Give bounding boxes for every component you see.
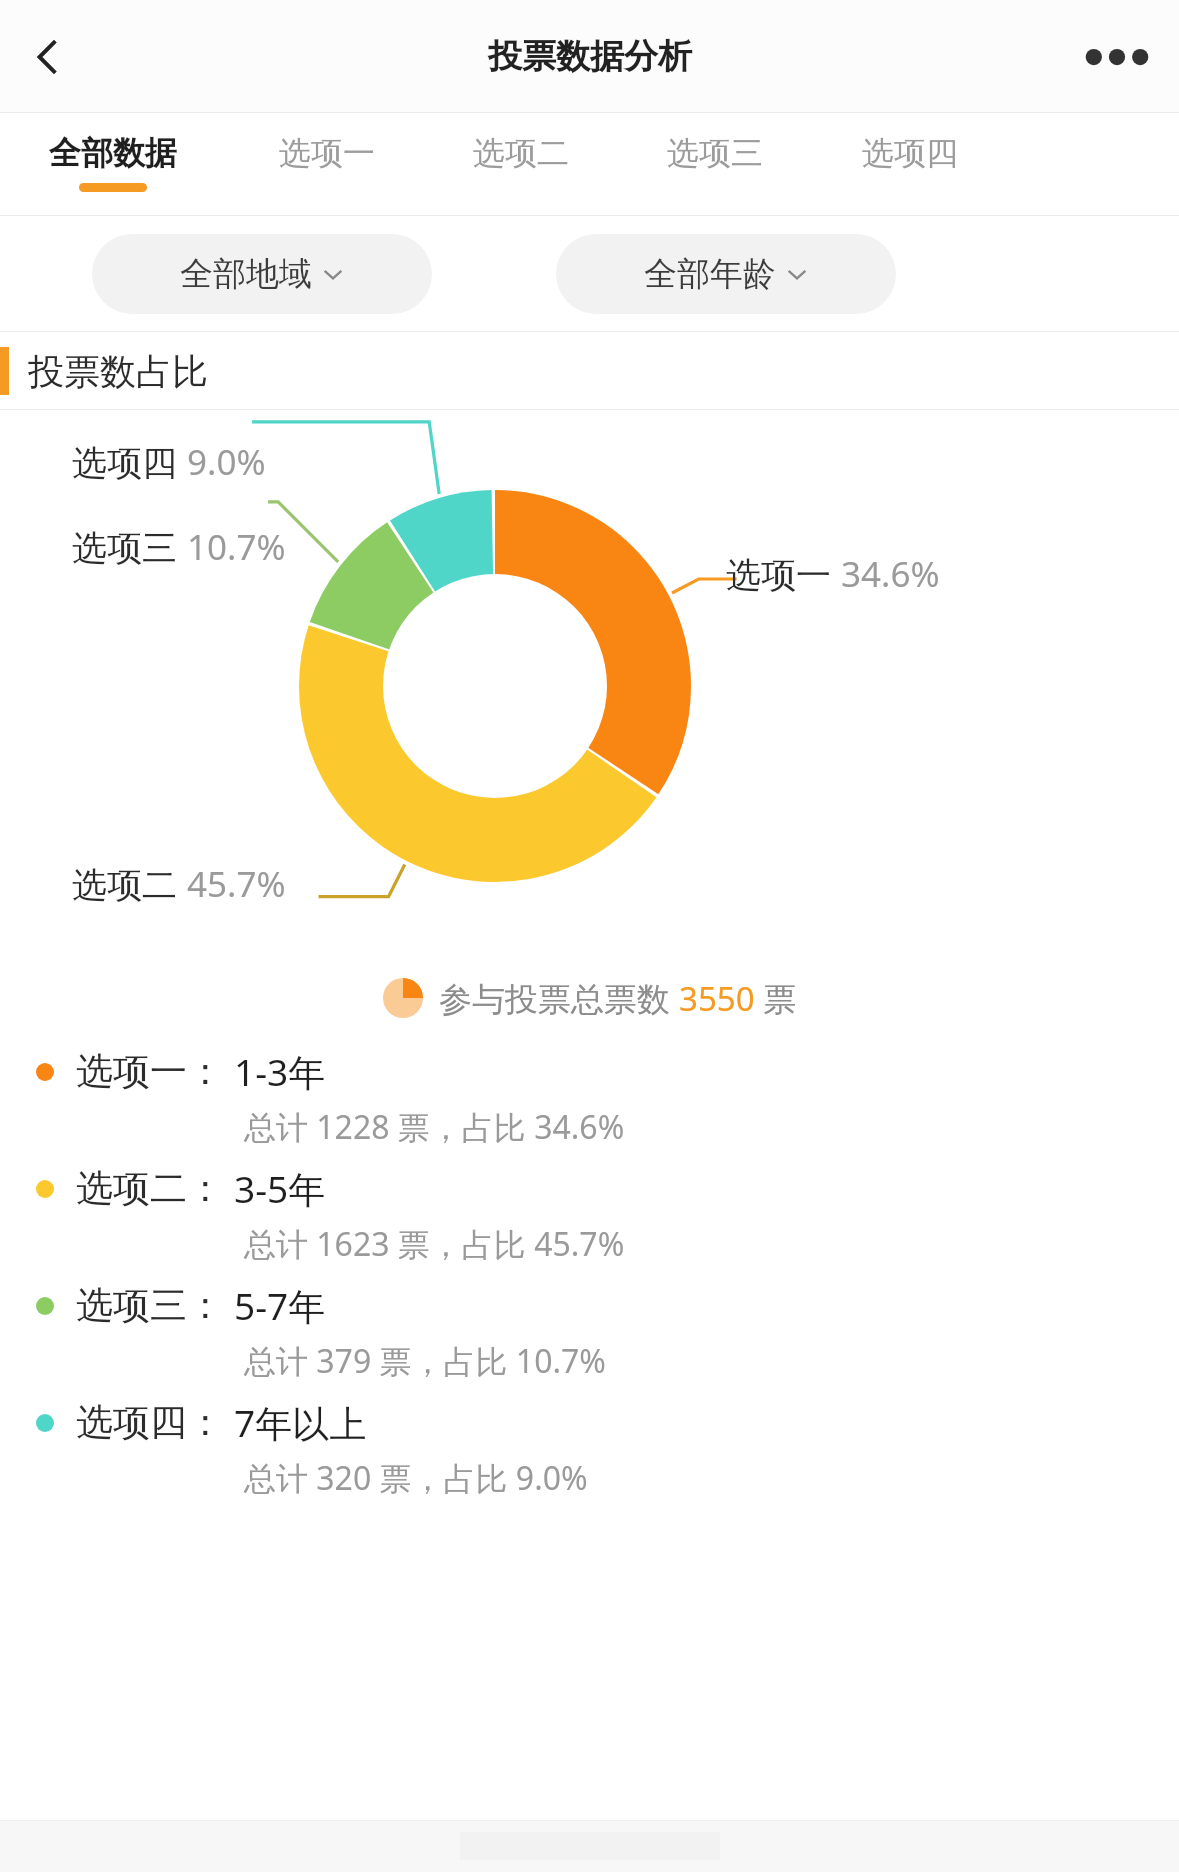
staticText: 3-5年 — [234, 1163, 326, 1214]
staticText: 总计 1228 票，占比 34.6% — [244, 1105, 625, 1149]
staticText: 选项三： — [76, 1282, 224, 1329]
button[interactable]: Back — [10, 21, 82, 93]
button[interactable]: 选项二 — [446, 113, 596, 216]
button[interactable]: 选项一： — [0, 1046, 1179, 1163]
button[interactable]: More options — [1077, 27, 1157, 87]
staticText: 选项一 — [726, 550, 841, 598]
button[interactable]: 选项二： — [0, 1163, 1179, 1280]
button[interactable]: 选项一 — [252, 113, 402, 216]
staticText: 5-7年 — [234, 1280, 326, 1331]
staticText: 参与投票总票数 — [439, 976, 679, 1021]
button[interactable]: 选项三 — [640, 113, 790, 216]
staticText: 1-3年 — [234, 1046, 326, 1097]
staticText: 投票数据分析 — [488, 35, 692, 78]
staticText: 全部数据 — [49, 133, 177, 173]
staticText: 总计 379 票，占比 10.7% — [244, 1339, 606, 1383]
staticText: 总计 1623 票，占比 45.7% — [244, 1222, 625, 1266]
button[interactable]: 选项四 — [835, 113, 985, 216]
staticText: 45.7% — [187, 860, 286, 908]
staticText: 选项四 — [862, 133, 958, 173]
staticText: 票 — [755, 976, 797, 1021]
staticText: 选项四 — [72, 438, 187, 486]
staticText: 选项四： — [76, 1399, 224, 1446]
button[interactable]: 选项三： — [0, 1280, 1179, 1397]
staticText: 全部地域 — [180, 253, 312, 295]
staticText: 全部年龄 — [644, 253, 776, 295]
staticText: 选项一 — [279, 133, 375, 173]
staticText: 34.6% — [841, 550, 940, 598]
staticText: 9.0% — [187, 438, 266, 486]
staticText: 选项二： — [76, 1165, 224, 1212]
staticText: 10.7% — [187, 523, 286, 571]
button[interactable]: 全部地域 — [92, 234, 432, 314]
staticText: 选项三 — [72, 523, 187, 571]
staticText: 3550 — [679, 976, 755, 1021]
staticText: 选项一： — [76, 1048, 224, 1095]
staticText: 总计 320 票，占比 9.0% — [244, 1456, 588, 1500]
staticText: 投票数占比 — [28, 349, 208, 394]
button[interactable]: 全部数据 — [13, 113, 213, 216]
staticText: 7年以上 — [234, 1397, 367, 1448]
button[interactable]: 选项四： — [0, 1397, 1179, 1514]
button[interactable]: 全部年龄 — [556, 234, 896, 314]
staticText: 选项三 — [667, 133, 763, 173]
staticText: 选项二 — [473, 133, 569, 173]
staticText: 选项二 — [72, 860, 187, 908]
